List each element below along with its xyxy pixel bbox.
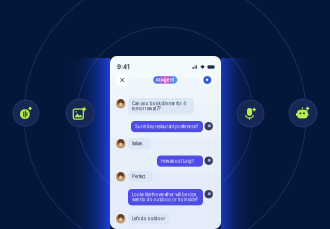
button[interactable]: Close: [115, 73, 129, 87]
button[interactable]: Audio AI: [13, 100, 39, 126]
staticText: How about Luigi?: [161, 158, 194, 164]
staticText: Let's do outdoor.: [132, 216, 165, 221]
staticText: Looks like the weather will be nice, wan…: [132, 192, 198, 202]
button[interactable]: Voice mode: [200, 73, 214, 87]
staticText: Italian.: [132, 141, 144, 146]
staticText: Can you book dinner for 4 tomorrow at 7?: [132, 101, 186, 111]
staticText: Perfect.: [132, 174, 146, 179]
button[interactable]: Voice AI: [237, 100, 264, 127]
staticText: Sure! Any restaurant preference?: [135, 124, 198, 129]
button[interactable]: AI assistant: [289, 99, 317, 127]
staticText: AI Agent: [156, 77, 175, 82]
button[interactable]: Image AI: [66, 99, 94, 127]
staticText: 9:41: [117, 63, 130, 71]
button[interactable]: AI Agent: [153, 76, 177, 84]
